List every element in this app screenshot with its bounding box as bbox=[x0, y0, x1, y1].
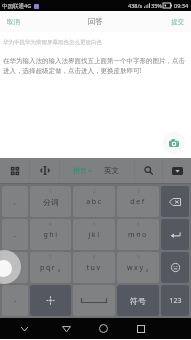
button[interactable]: Keyboard menu bbox=[0, 158, 29, 183]
button[interactable]: Home bbox=[84, 318, 122, 339]
button[interactable]: Add photo bbox=[163, 132, 185, 154]
staticText: abc bbox=[86, 197, 103, 207]
button[interactable]: 1 bbox=[30, 186, 71, 217]
button[interactable]: 拼音 bbox=[68, 162, 97, 179]
staticText: s bbox=[58, 267, 61, 273]
staticText: , bbox=[14, 197, 16, 207]
staticText: 09:34 bbox=[174, 2, 189, 9]
button[interactable]: Search bbox=[135, 158, 162, 183]
staticText: def bbox=[130, 197, 146, 207]
staticText: jkl bbox=[88, 230, 101, 240]
button[interactable]: 6 bbox=[117, 219, 159, 250]
staticText: 2 bbox=[93, 188, 96, 194]
staticText: 回答 bbox=[88, 17, 103, 26]
staticText: 分词 bbox=[43, 197, 59, 207]
button[interactable]: 2 bbox=[73, 186, 115, 217]
staticText: mno bbox=[128, 230, 148, 240]
button[interactable]: Assistive touch bbox=[0, 250, 21, 284]
staticText: 英文 bbox=[104, 166, 119, 175]
staticText: pqr bbox=[40, 263, 57, 273]
staticText: 8 bbox=[93, 254, 96, 260]
button[interactable]: Back bbox=[48, 318, 84, 339]
staticText: 中国联通4G bbox=[2, 2, 32, 10]
button[interactable]: 5 bbox=[73, 219, 115, 250]
button[interactable]: Hide keyboard bbox=[163, 158, 191, 183]
button[interactable]: 4 bbox=[30, 219, 71, 250]
button[interactable]: Space bbox=[73, 285, 115, 316]
staticText: 3 bbox=[137, 188, 140, 194]
button[interactable]: Emoji bbox=[161, 252, 189, 283]
button[interactable]: Symbols bbox=[30, 285, 71, 316]
staticText: 提交 bbox=[171, 18, 184, 26]
staticText: 5 bbox=[93, 221, 96, 227]
staticText: 拼音 bbox=[73, 166, 87, 175]
staticText: 在华为输入法的输入法界面找五上面第一个中字形的图片，点击进入，选择超级定做，点击… bbox=[3, 57, 189, 75]
staticText: 438/s bbox=[128, 2, 143, 9]
staticText: 华为手机华为荣耀屏幕黑色怎么更改白色 bbox=[3, 39, 102, 46]
staticText: . bbox=[14, 230, 16, 240]
staticText: 123 bbox=[169, 296, 182, 306]
staticText: 9 bbox=[137, 254, 140, 260]
staticText: tuv bbox=[86, 263, 102, 273]
button[interactable]: Recents bbox=[122, 318, 160, 339]
button[interactable]: Move cursor bbox=[30, 158, 59, 183]
button[interactable]: Enter bbox=[161, 219, 189, 250]
button[interactable]: Hide keyboard bbox=[0, 318, 48, 339]
button[interactable]: 7 bbox=[30, 252, 71, 283]
staticText: z bbox=[146, 267, 149, 273]
staticText: 35% bbox=[151, 2, 162, 9]
staticText: 1 bbox=[49, 188, 52, 194]
button[interactable]: ? bbox=[2, 252, 28, 283]
button[interactable]: 9 bbox=[117, 252, 159, 283]
button[interactable]: 英文 bbox=[97, 162, 126, 179]
button[interactable]: 提交 bbox=[164, 14, 191, 30]
staticText: 6 bbox=[137, 221, 140, 227]
staticText: 取消 bbox=[7, 18, 20, 26]
staticText: wxy bbox=[127, 263, 145, 273]
button[interactable]: 符号 bbox=[117, 285, 159, 316]
button[interactable]: 取消 bbox=[0, 14, 27, 30]
button[interactable]: 3 bbox=[117, 186, 159, 217]
staticText: 7 bbox=[49, 254, 52, 260]
button[interactable]: 8 bbox=[73, 252, 115, 283]
staticText: 4 bbox=[49, 221, 52, 227]
button[interactable]: Backspace bbox=[161, 186, 189, 217]
staticText: - bbox=[14, 296, 17, 306]
button[interactable]: 123 bbox=[161, 285, 189, 316]
staticText: 符号 bbox=[130, 296, 146, 306]
staticText: ghi bbox=[43, 230, 59, 240]
